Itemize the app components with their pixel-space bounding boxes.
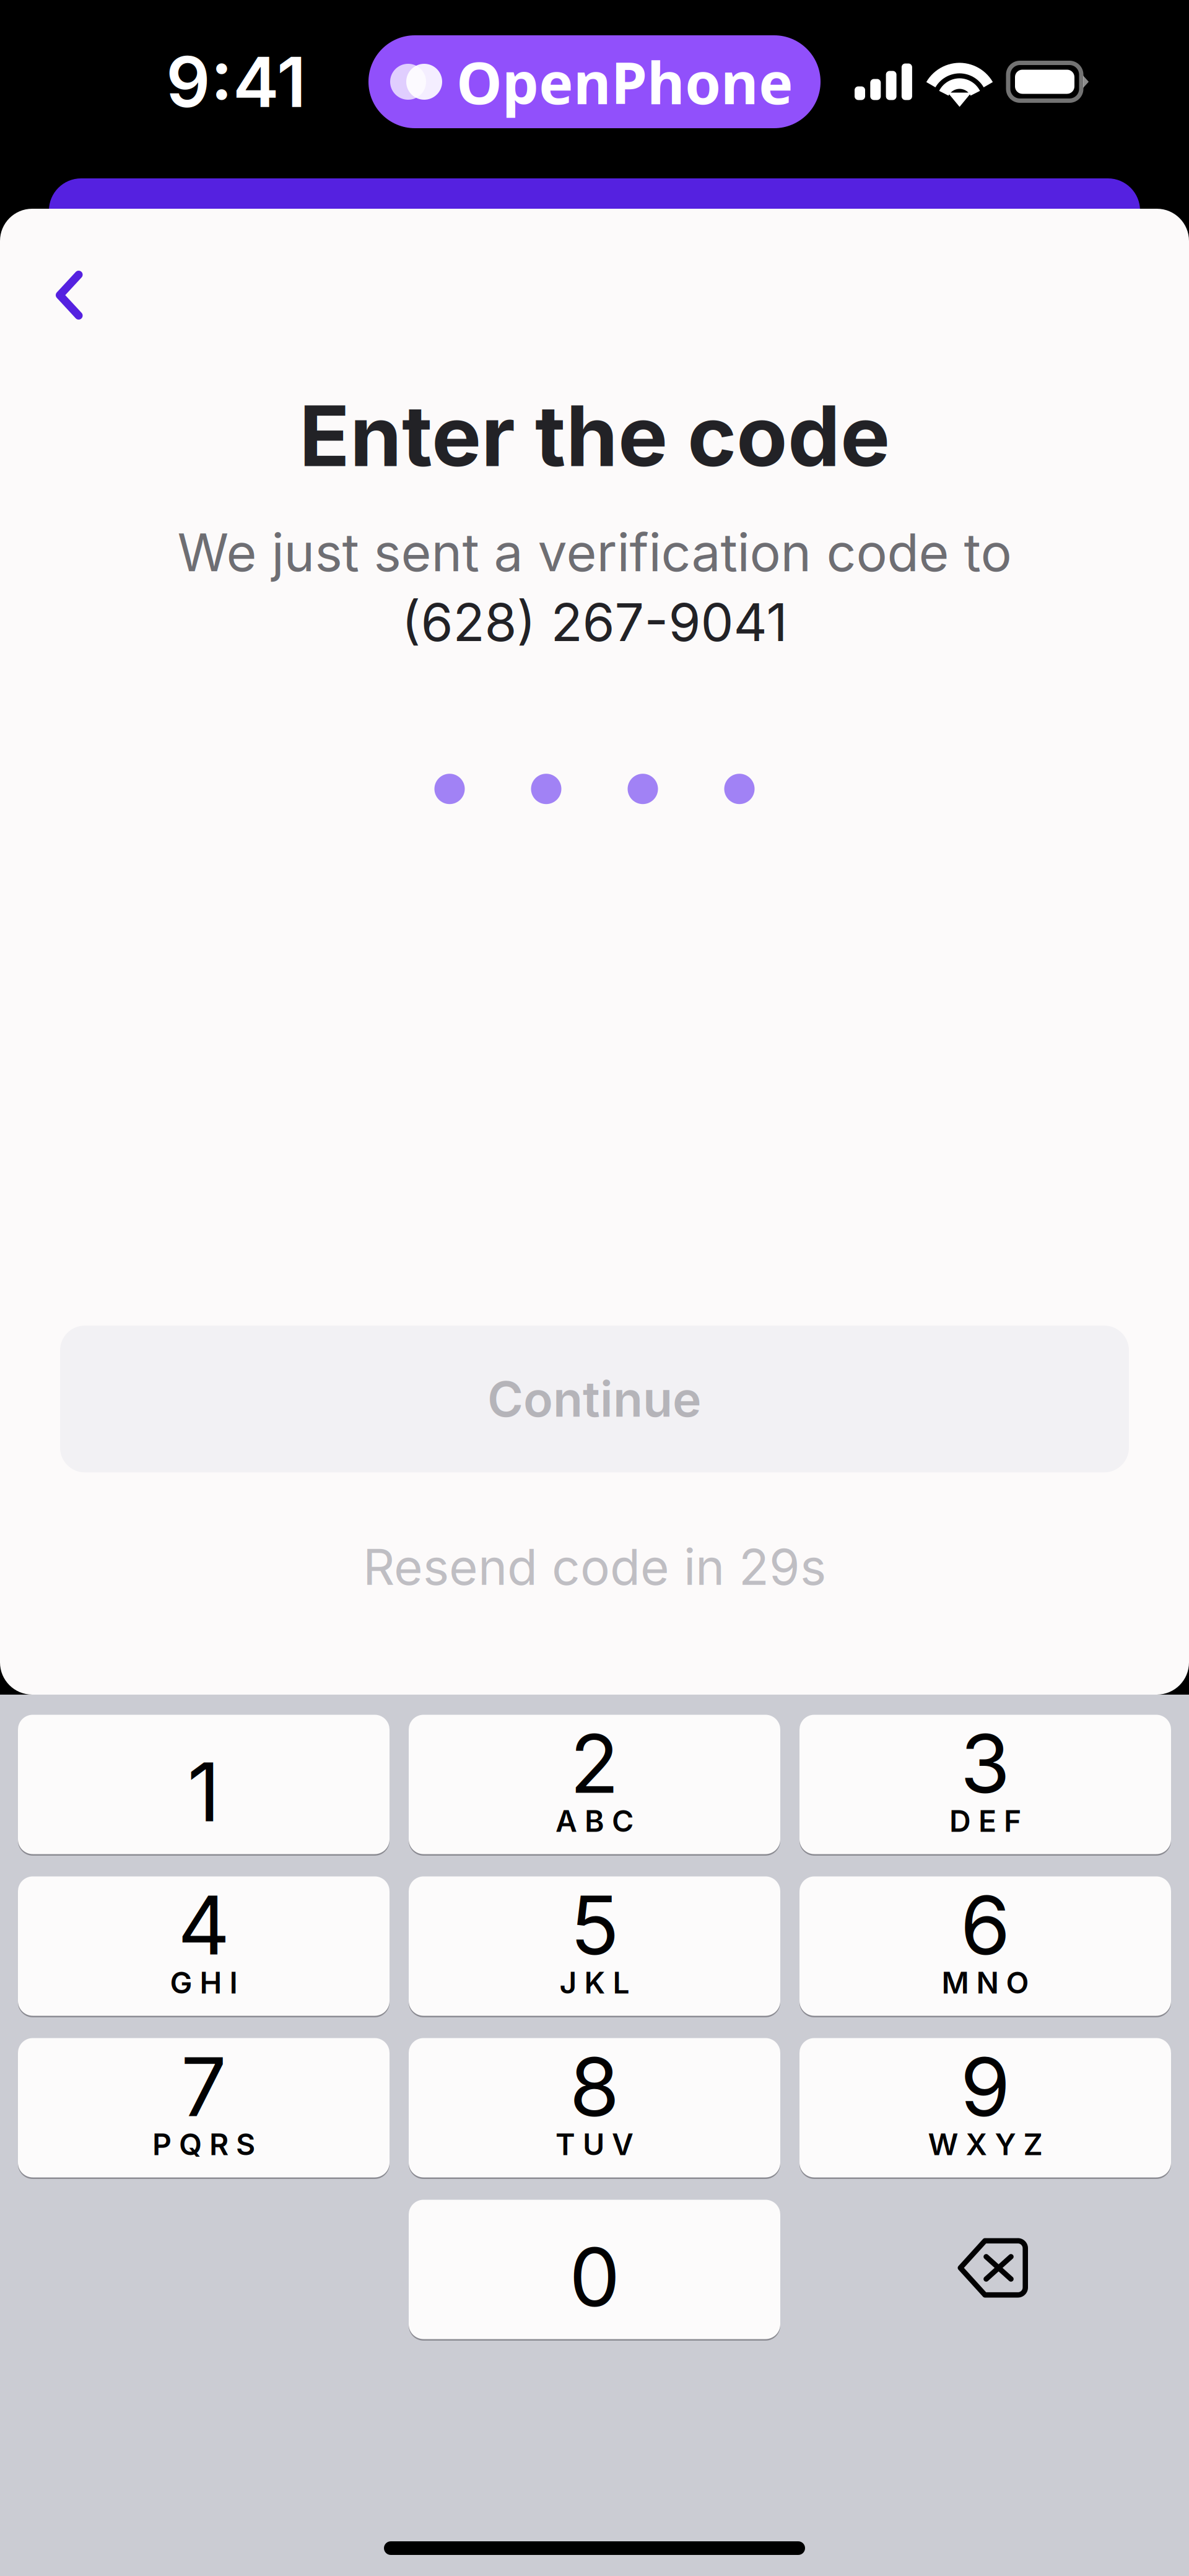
- staticText: We just sent a verification code to: [177, 521, 1012, 584]
- staticText: M N O: [942, 1965, 1029, 2001]
- button[interactable]: Resend code in 29s: [363, 1472, 826, 1628]
- staticText: T U V: [555, 2126, 634, 2162]
- staticText: W X Y Z: [928, 2126, 1043, 2162]
- button[interactable]: 0: [409, 2198, 780, 2338]
- staticText: 6: [960, 1876, 1010, 1974]
- staticText: 9:41: [166, 40, 306, 124]
- staticText: D E F: [949, 1803, 1021, 1839]
- button[interactable]: 1: [18, 1713, 390, 1853]
- staticText: Resend code in 29s: [363, 1537, 826, 1597]
- button[interactable]: 6: [799, 1875, 1171, 2014]
- staticText: J K L: [560, 1965, 629, 2001]
- staticText: 9: [960, 2038, 1010, 2136]
- staticText: 0: [569, 2228, 620, 2326]
- button[interactable]: Continue: [60, 1326, 1129, 1472]
- staticText: 1: [187, 1743, 220, 1841]
- button[interactable]: Delete: [799, 2198, 1171, 2338]
- button[interactable]: 9: [799, 2037, 1171, 2176]
- staticText: 8: [569, 2038, 620, 2136]
- button[interactable]: 2: [409, 1713, 780, 1853]
- staticText: 4: [178, 1876, 230, 1974]
- staticText: OpenPhone: [456, 43, 793, 120]
- staticText: Enter the code: [299, 385, 890, 486]
- staticText: A B C: [555, 1803, 634, 1839]
- staticText: 5: [570, 1876, 619, 1974]
- staticText: G H I: [170, 1965, 237, 2001]
- button[interactable]: 7: [18, 2037, 390, 2176]
- staticText: (628) 267-9041: [402, 591, 787, 654]
- staticText: 7: [181, 2038, 227, 2136]
- staticText: 2: [570, 1714, 619, 1812]
- staticText: Continue: [487, 1370, 702, 1428]
- staticText: P Q R S: [152, 2126, 255, 2162]
- button[interactable]: 3: [799, 1713, 1171, 1853]
- button[interactable]: 4: [18, 1875, 390, 2014]
- button[interactable]: 8: [409, 2037, 780, 2176]
- staticText: 3: [960, 1714, 1010, 1812]
- button[interactable]: 5: [409, 1875, 780, 2014]
- button[interactable]: Back: [0, 209, 113, 342]
